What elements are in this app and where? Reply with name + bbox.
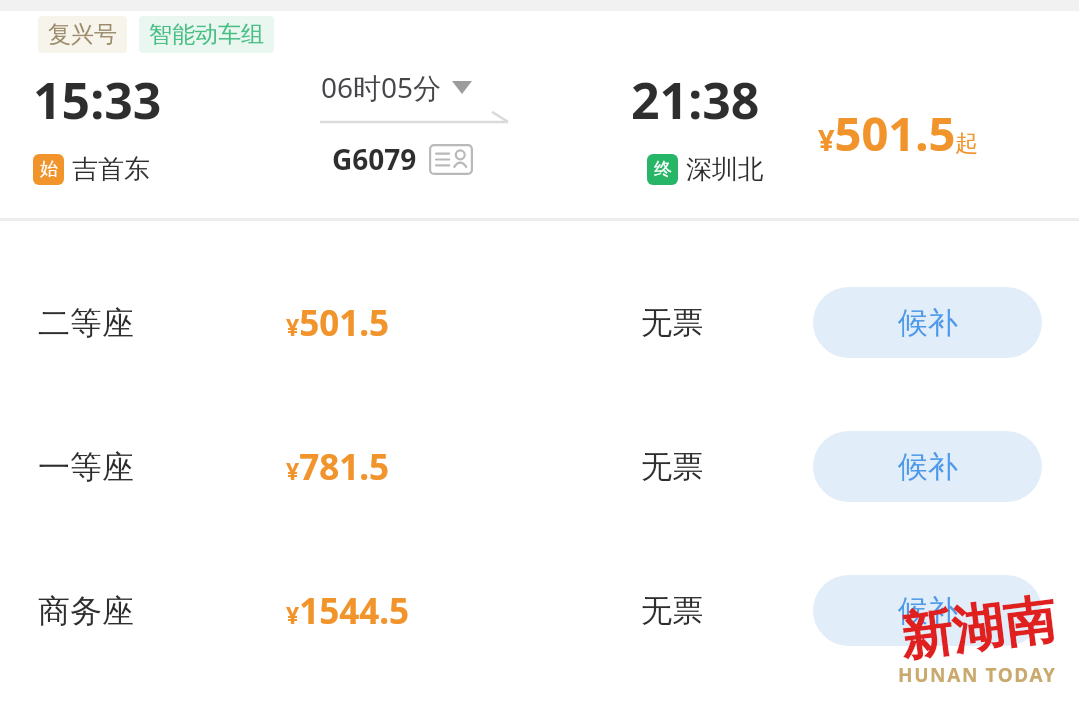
button[interactable]: 候补 (813, 431, 1042, 502)
staticText: ¥1544.5 (286, 587, 410, 635)
staticText: 一等座 (38, 447, 134, 487)
other: ID verification (429, 144, 473, 175)
staticText: 21:38 (631, 66, 760, 134)
staticText: 无票 (641, 303, 703, 342)
staticText: 始 (40, 158, 58, 181)
staticText: 商务座 (38, 591, 134, 631)
staticText: ¥501.5 (286, 299, 390, 347)
button[interactable]: 智能动车组 (139, 16, 274, 53)
button[interactable]: 候补 (813, 287, 1042, 358)
staticText: 无票 (641, 447, 703, 486)
staticText: 终 (654, 158, 672, 181)
staticText: 06时05分 (321, 68, 442, 106)
staticText: 无票 (641, 591, 703, 630)
button[interactable]: 复兴号 (38, 16, 127, 53)
staticText: 二等座 (38, 303, 134, 343)
staticText: 吉首东 (72, 153, 150, 186)
staticText: G6079 (332, 140, 417, 178)
staticText: HUNAN TODAY (898, 662, 1057, 688)
staticText: 15:33 (33, 66, 162, 134)
staticText: 智能动车组 (149, 20, 264, 49)
staticText: 候补 (898, 592, 958, 630)
staticText: 深圳北 (686, 153, 764, 186)
staticText: 候补 (898, 304, 958, 342)
staticText: ¥781.5 (286, 443, 390, 491)
staticText: ¥501.5起 (818, 101, 979, 165)
staticText: 候补 (898, 448, 958, 486)
button[interactable]: 候补 (813, 575, 1042, 646)
staticText: 新湖南 (897, 587, 1059, 671)
staticText: 复兴号 (48, 20, 117, 49)
